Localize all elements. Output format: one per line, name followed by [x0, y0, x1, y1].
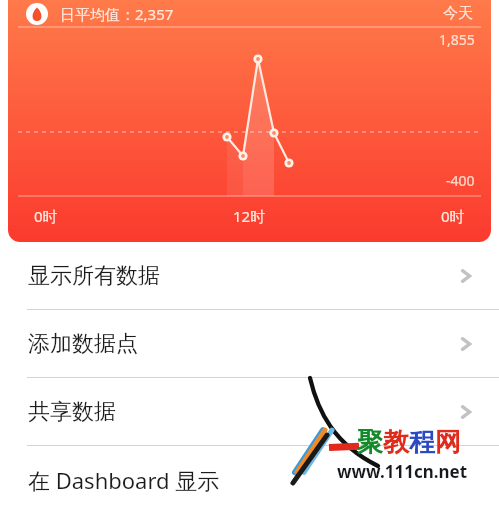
staticText: -400	[446, 171, 475, 190]
staticText: 聚	[357, 426, 383, 459]
staticText: 教	[383, 426, 409, 459]
staticText: 今天	[443, 4, 473, 23]
staticText: 在 Dashboard 显示	[28, 465, 220, 495]
other: 显示所有数据	[455, 265, 477, 287]
staticText: www.111cn.net	[337, 460, 468, 483]
staticText: 添加数据点	[28, 330, 138, 358]
staticText: 1,855	[439, 30, 475, 49]
button[interactable]: 显示所有数据	[0, 242, 499, 309]
other: 添加数据点	[455, 333, 477, 355]
staticText: 显示所有数据	[28, 262, 160, 290]
other: 共享数据	[455, 401, 477, 423]
button[interactable]: 添加数据点	[0, 310, 499, 377]
button[interactable]: 共享数据	[0, 378, 499, 445]
staticText: 日平均值：2,357	[60, 4, 174, 24]
button[interactable]: 在 Dashboard 显示	[0, 446, 499, 513]
staticText: 0时	[34, 206, 58, 226]
staticText: 网	[435, 426, 461, 459]
staticText: 程	[409, 426, 435, 459]
staticText: 共享数据	[28, 398, 116, 426]
staticText: 0时	[441, 206, 465, 226]
staticText: 12时	[233, 206, 266, 226]
